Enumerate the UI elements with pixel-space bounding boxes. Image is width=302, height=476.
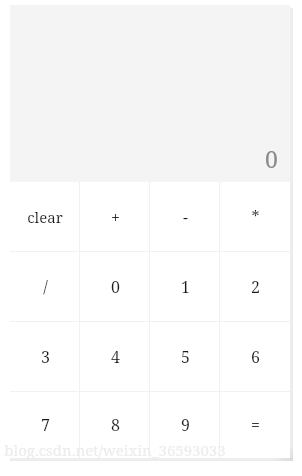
staticText: = [251, 414, 260, 436]
button[interactable]: clear [10, 182, 80, 251]
button[interactable]: 0 [80, 252, 150, 321]
button[interactable]: = [220, 392, 290, 458]
button[interactable]: 3 [10, 322, 80, 391]
button[interactable]: 2 [220, 252, 290, 321]
staticText: 4 [111, 346, 120, 368]
staticText: + [111, 206, 120, 228]
staticText: 6 [251, 346, 260, 368]
button[interactable]: 6 [220, 322, 290, 391]
staticText: 0 [111, 276, 120, 298]
button[interactable]: + [80, 182, 150, 251]
staticText: 2 [251, 276, 260, 298]
staticText: 3 [41, 346, 50, 368]
staticText: 0 [265, 143, 278, 174]
button[interactable]: 8 [80, 392, 150, 458]
staticText: blog.csdn.net/weixin_36593033 [4, 440, 226, 460]
button[interactable]: 9 [150, 392, 220, 458]
staticText: - [183, 206, 188, 228]
button[interactable]: * [220, 182, 290, 251]
staticText: 5 [181, 346, 190, 368]
button[interactable]: 4 [80, 322, 150, 391]
staticText: 7 [41, 414, 50, 436]
button[interactable]: 1 [150, 252, 220, 321]
button[interactable]: 5 [150, 322, 220, 391]
staticText: 9 [181, 414, 190, 436]
staticText: 8 [111, 414, 120, 436]
staticText: clear [27, 207, 63, 227]
staticText: * [251, 206, 260, 228]
button[interactable]: - [150, 182, 220, 251]
staticText: / [43, 276, 48, 298]
button[interactable]: 7 [10, 392, 80, 458]
button[interactable]: / [10, 252, 80, 321]
staticText: 1 [181, 276, 190, 298]
